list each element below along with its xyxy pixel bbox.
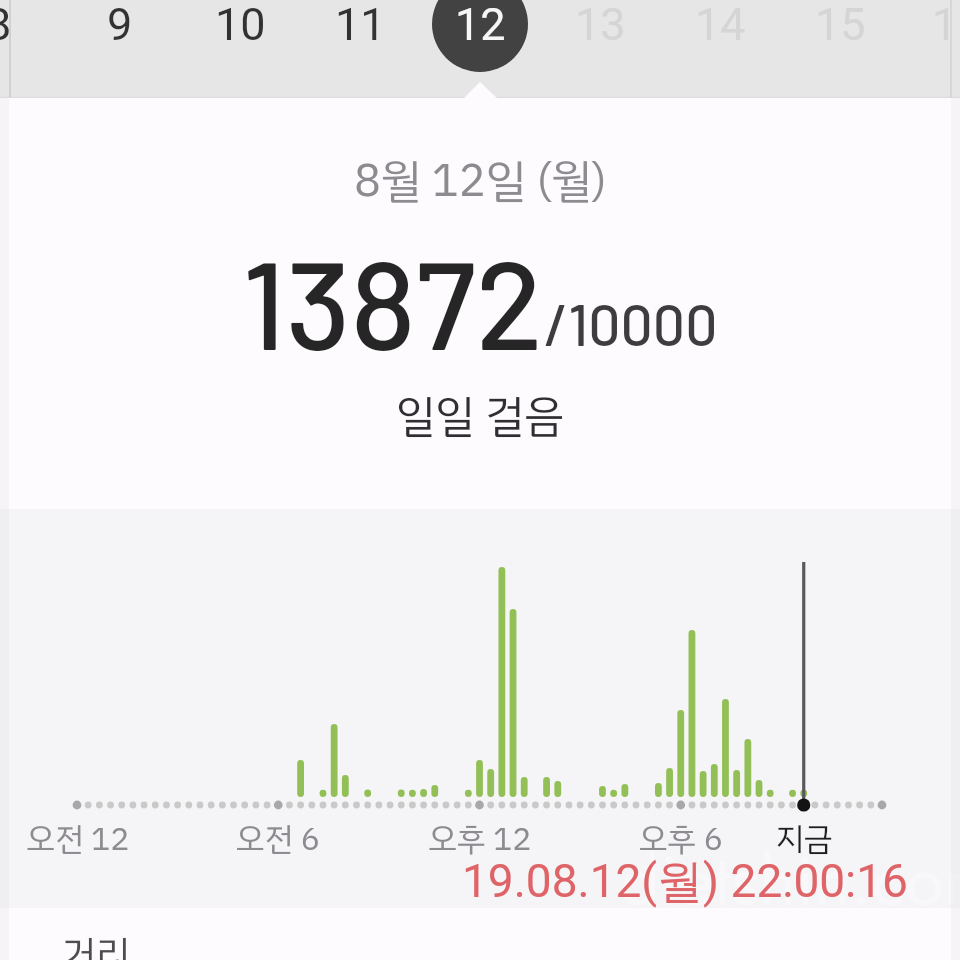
staticText: 15 <box>815 0 866 51</box>
staticText: 13872 <box>242 226 544 375</box>
button[interactable]: 8 <box>0 0 47 72</box>
staticText: 일일 걸음 <box>396 383 564 449</box>
staticText: 16 <box>932 0 960 51</box>
button[interactable]: 12 <box>432 0 528 72</box>
staticText: 10 <box>215 0 266 51</box>
staticText: 12 <box>455 0 506 51</box>
staticText: 오후 12 <box>428 815 532 863</box>
staticText: dietshin.com <box>620 830 960 931</box>
button[interactable]: 거리 <box>0 908 960 960</box>
staticText: 8월 12일 (월) <box>354 147 607 215</box>
staticText: 19.08.12(월) 22:00:16 <box>462 853 908 911</box>
staticText: 거리 <box>62 926 130 960</box>
staticText: 8 <box>0 0 12 51</box>
staticText: 오후 6 <box>639 815 723 863</box>
staticText: 13 <box>575 0 626 51</box>
button[interactable]: 16 <box>909 0 960 72</box>
button[interactable]: 13 <box>552 0 648 72</box>
staticText: 14 <box>695 0 746 51</box>
staticText: 오전 6 <box>236 815 320 863</box>
staticText: 오전 12 <box>26 815 130 863</box>
other: dietshin.com watermark <box>620 830 960 931</box>
button[interactable]: 10 <box>192 0 288 72</box>
staticText: 지금 <box>775 815 833 863</box>
button[interactable]: 14 <box>672 0 768 72</box>
button[interactable]: 오전 12 <box>0 509 960 908</box>
button[interactable]: 15 <box>792 0 888 72</box>
button[interactable]: 9 <box>72 0 168 72</box>
button[interactable]: 11 <box>312 0 408 72</box>
staticText: 11 <box>335 0 386 51</box>
staticText: 9 <box>107 0 133 51</box>
staticText: /10000 <box>544 289 718 357</box>
